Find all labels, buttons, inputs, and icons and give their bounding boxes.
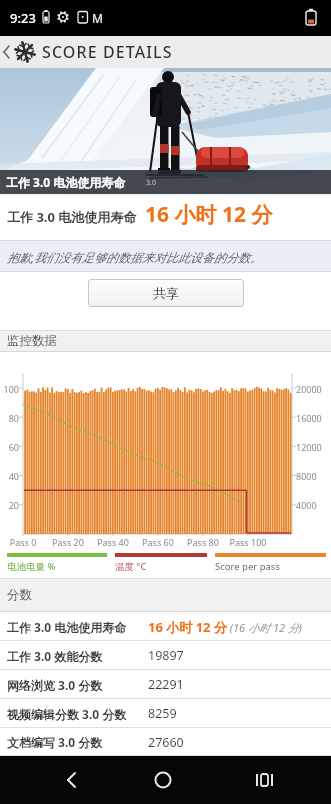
- staticText: 3.0: [146, 178, 156, 188]
- staticText: Pass 40: [93, 536, 133, 548]
- staticText: 视频编辑分数 3.0 分数: [7, 706, 127, 722]
- button[interactable]: SCORE DETAILS: [0, 36, 331, 68]
- staticText: 网络浏览 3.0 分数: [7, 677, 103, 693]
- staticText: 19897: [148, 647, 184, 664]
- staticText: 20: [0, 499, 19, 511]
- staticText: 温度 °C: [115, 560, 147, 573]
- staticText: 分数: [7, 587, 32, 603]
- staticText: 22291: [148, 676, 184, 693]
- staticText: 20000: [296, 383, 322, 395]
- staticText: 工作 3.0 电池使用寿命: [6, 174, 126, 190]
- staticText: 工作 3.0 电池使用寿命: [7, 208, 137, 226]
- button[interactable]: 文档编写 3.0 分数: [0, 728, 331, 756]
- staticText: 工作 3.0 电池使用寿命: [7, 619, 127, 635]
- staticText: 8259: [148, 705, 177, 722]
- button[interactable]: 工作 3.0 电池使用寿命: [0, 612, 331, 641]
- staticText: 8000: [296, 470, 317, 482]
- staticText: 60: [0, 441, 19, 453]
- button[interactable]: 共享: [88, 279, 244, 307]
- staticText: 16 小时 12 分: [145, 200, 273, 229]
- button[interactable]: [148, 765, 178, 795]
- staticText: 9:23: [10, 9, 36, 27]
- staticText: Score per pass: [215, 560, 280, 573]
- button[interactable]: [56, 765, 86, 795]
- staticText: 16000: [296, 412, 322, 424]
- button[interactable]: 工作 3.0 效能分数: [0, 641, 331, 670]
- staticText: 共享: [153, 285, 179, 301]
- staticText: Pass 60: [138, 536, 178, 548]
- staticText: Pass 20: [48, 536, 88, 548]
- staticText: 100: [0, 383, 19, 395]
- staticText: SCORE DETAILS: [42, 41, 173, 63]
- button[interactable]: 网络浏览 3.0 分数: [0, 670, 331, 699]
- staticText: Pass 100: [228, 536, 268, 548]
- staticText: 12000: [296, 441, 322, 453]
- staticText: Pass 0: [3, 536, 43, 548]
- button[interactable]: [249, 765, 279, 795]
- staticText: 80: [0, 412, 19, 424]
- button[interactable]: 视频编辑分数 3.0 分数: [0, 699, 331, 728]
- staticText: M: [92, 10, 103, 26]
- staticText: 工作 3.0 效能分数: [7, 648, 103, 664]
- staticText: 4000: [296, 499, 317, 511]
- staticText: 抱歉,我们没有足够的数据来对比此设备的分数。: [7, 249, 263, 265]
- staticText: (16 小时 12 分): [227, 620, 303, 635]
- staticText: Pass 80: [183, 536, 223, 548]
- staticText: 27660: [148, 734, 184, 751]
- staticText: 文档编写 3.0 分数: [7, 734, 103, 750]
- staticText: 40: [0, 470, 19, 482]
- staticText: 16 小时 12 分: [148, 618, 227, 636]
- staticText: 监控数据: [7, 333, 57, 349]
- staticText: 电池电量 %: [7, 560, 56, 573]
